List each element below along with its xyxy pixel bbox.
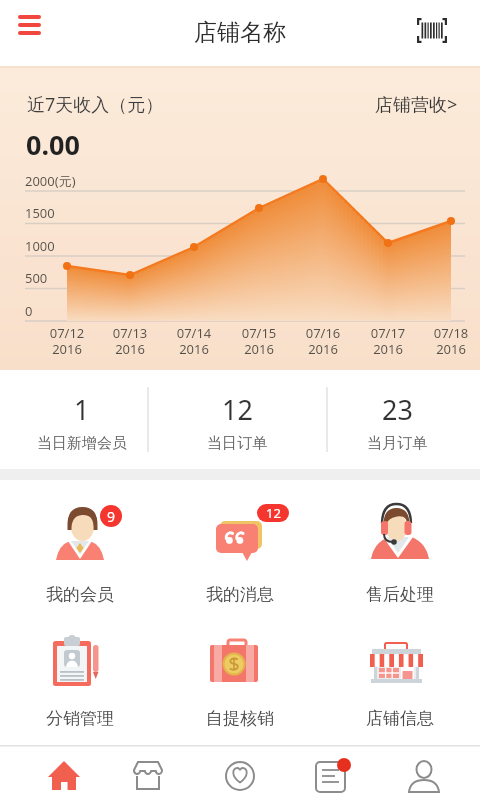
button[interactable]: [407, 759, 441, 793]
staticText: 售后处理: [366, 584, 434, 605]
staticText: 07/13 2016: [100, 324, 160, 357]
staticText: 07/12 2016: [37, 324, 97, 357]
staticText: 店铺营收>: [375, 92, 458, 117]
staticText: 我的会员: [46, 584, 114, 605]
staticText: 07/14 2016: [164, 324, 224, 357]
button[interactable]: [131, 759, 165, 793]
staticText: 1000: [25, 237, 55, 255]
staticText: 当月订单: [367, 434, 427, 453]
button[interactable]: 9: [0, 501, 160, 605]
button[interactable]: [47, 759, 81, 793]
staticText: 23: [382, 391, 413, 428]
button[interactable]: 店铺营收>: [375, 92, 458, 117]
staticText: 07/17 2016: [358, 324, 418, 357]
staticText: 07/16 2016: [293, 324, 353, 357]
staticText: 店铺名称: [165, 18, 315, 47]
button[interactable]: 12: [160, 501, 320, 605]
staticText: 0: [25, 302, 33, 320]
staticText: 分销管理: [46, 708, 114, 729]
button[interactable]: 分销管理: [0, 631, 160, 729]
button[interactable]: 自提核销: [160, 631, 320, 729]
staticText: 近7天收入（元）: [27, 92, 164, 117]
staticText: 我的消息: [206, 584, 274, 605]
button[interactable]: 23: [317, 370, 477, 469]
staticText: 2000(元): [25, 172, 76, 190]
button[interactable]: [13, 9, 47, 43]
button[interactable]: [414, 14, 450, 50]
button[interactable]: [223, 759, 257, 793]
staticText: 店铺信息: [366, 708, 434, 729]
staticText: 当日订单: [207, 434, 267, 453]
button[interactable]: 12: [157, 370, 317, 469]
staticText: 1: [74, 391, 90, 428]
staticText: 自提核销: [206, 708, 274, 729]
staticText: 12: [222, 391, 253, 428]
staticText: 当日新增会员: [37, 434, 127, 453]
button[interactable]: 售后处理: [320, 501, 480, 605]
staticText: 07/15 2016: [229, 324, 289, 357]
button[interactable]: 1: [2, 370, 162, 469]
staticText: 07/18 2016: [421, 324, 480, 357]
staticText: 500: [25, 269, 48, 287]
staticText: 0.00: [26, 126, 80, 163]
staticText: 9: [107, 507, 116, 526]
staticText: 1500: [25, 204, 55, 222]
staticText: 12: [266, 504, 281, 522]
button[interactable]: [314, 759, 348, 793]
button[interactable]: 店铺信息: [320, 631, 480, 729]
